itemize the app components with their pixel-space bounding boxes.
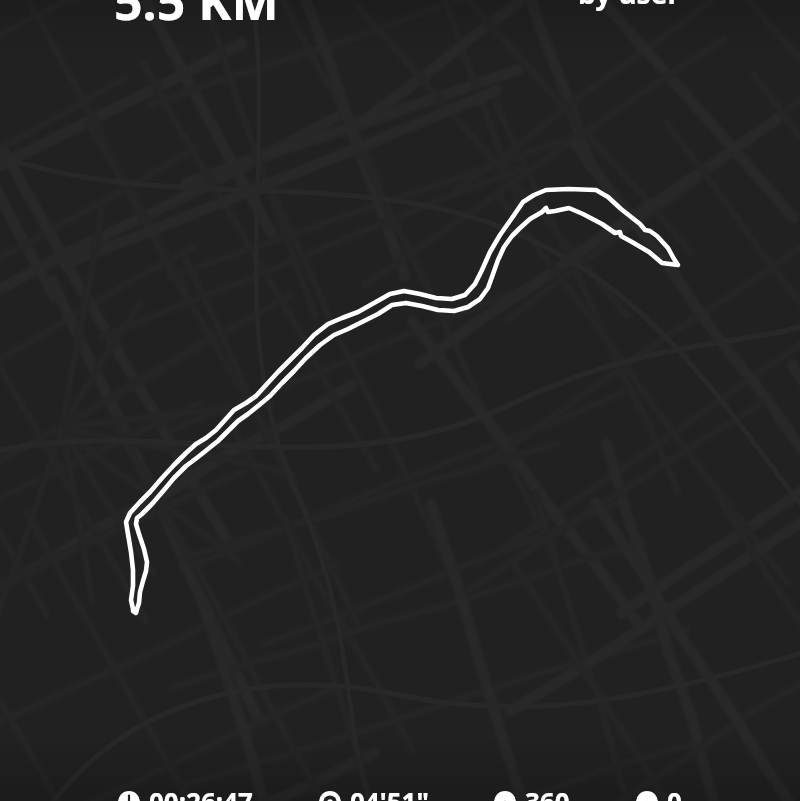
button[interactable]: Average pace [319, 784, 429, 801]
button[interactable]: Elevation gain [636, 784, 682, 801]
other: Duration [118, 791, 140, 801]
staticText: by user [578, 0, 680, 12]
staticText: 360 [525, 784, 570, 801]
staticText: 00:26:47 [149, 784, 253, 801]
staticText: 0 [667, 784, 682, 801]
other: Average pace [319, 791, 341, 801]
staticText: 5.5 KM [114, 0, 279, 35]
staticText: 04'51" [350, 784, 429, 801]
button[interactable]: Duration [118, 784, 253, 801]
button[interactable]: Route map [0, 0, 800, 801]
button[interactable]: Calories burned [494, 784, 570, 801]
other: Elevation gain [636, 791, 658, 801]
other: Calories burned [494, 791, 516, 801]
